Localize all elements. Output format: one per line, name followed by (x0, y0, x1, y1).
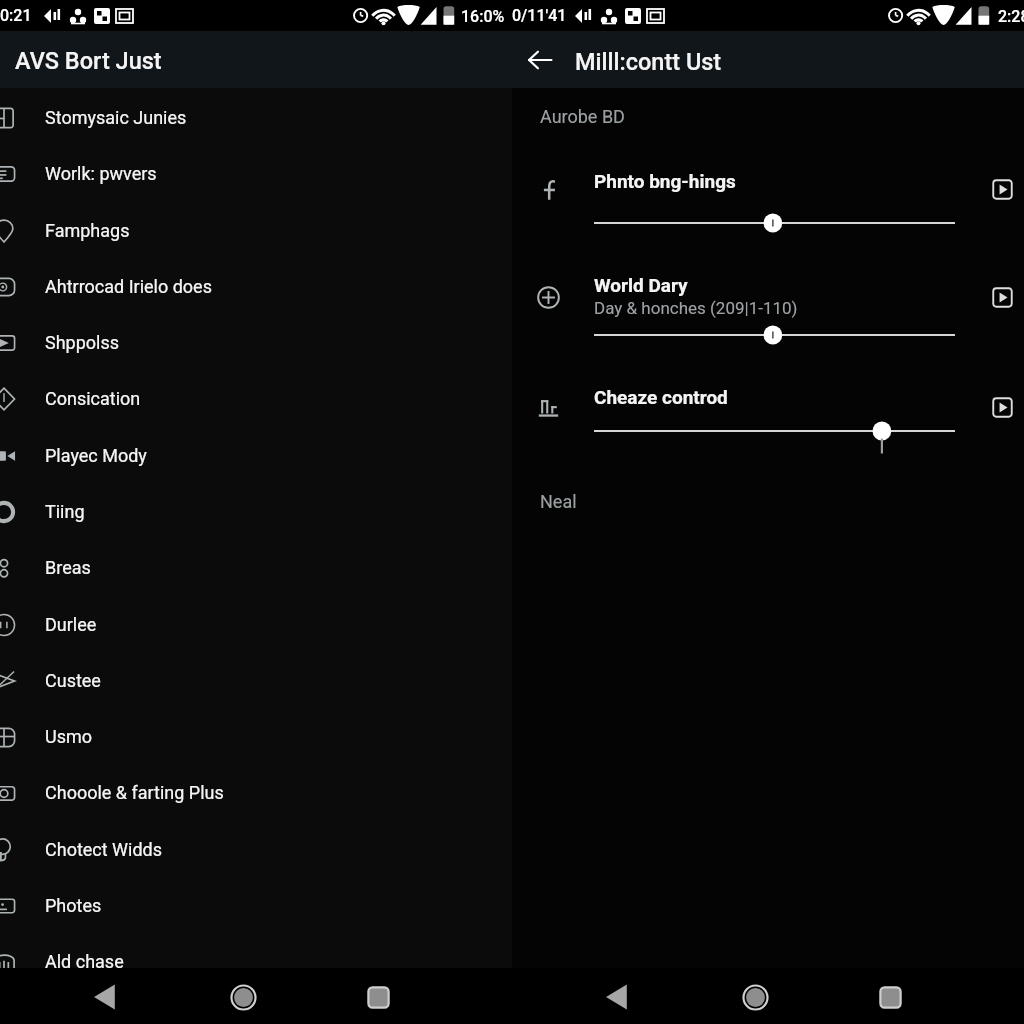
button[interactable]: Home (221, 975, 265, 1019)
staticText: Milll:contt Ust (575, 48, 722, 76)
staticText: Ald chase (45, 951, 124, 968)
button[interactable]: Recents (868, 975, 912, 1019)
button[interactable]: Playec Mody (0, 427, 512, 483)
button[interactable]: Durlee (0, 596, 512, 652)
button[interactable]: Play (982, 387, 1022, 427)
button[interactable]: Cheaze controd (586, 378, 964, 410)
staticText: Chooole & farting Plus (45, 782, 224, 803)
staticText: Chotect Widds (45, 839, 163, 860)
button[interactable]: Chotect Widds (0, 821, 512, 877)
button[interactable]: Photes (0, 877, 512, 933)
staticText: Usmo (45, 726, 93, 747)
staticText: Phnto bng-hings (594, 170, 736, 192)
button[interactable]: World Dary (586, 266, 964, 314)
staticText: Neal (540, 491, 577, 512)
button[interactable]: Back (597, 975, 641, 1019)
staticText: Consication (45, 388, 141, 409)
staticText: Shppolss (45, 332, 120, 353)
button[interactable]: Custee (0, 652, 512, 708)
staticText: AVS Bort Just (15, 47, 162, 75)
staticText: Breas (45, 557, 91, 578)
button[interactable]: Option (528, 277, 568, 317)
button[interactable]: Ald chase (0, 933, 512, 968)
button[interactable]: Stomysaic Junies (0, 89, 512, 145)
staticText: 2:28 (998, 7, 1024, 26)
button[interactable]: Ahtrrocad Irielo does (0, 258, 512, 314)
button[interactable]: Slider (586, 319, 963, 351)
button[interactable]: Worlk: pwvers (0, 145, 512, 201)
staticText: Photes (45, 895, 102, 916)
button[interactable]: Shppolss (0, 314, 512, 370)
button[interactable]: Consication (0, 370, 512, 426)
button[interactable]: Usmo (0, 708, 512, 764)
staticText: 16:0% (461, 7, 505, 26)
button[interactable]: Home (733, 975, 777, 1019)
staticText: Playec Mody (45, 445, 147, 466)
staticText: Stomysaic Junies (45, 107, 187, 128)
staticText: Ahtrrocad Irielo does (45, 276, 212, 297)
button[interactable]: Play (982, 169, 1022, 209)
button[interactable]: Tiing (0, 483, 512, 539)
staticText: 0/11'41 (512, 6, 567, 25)
button[interactable]: AVS Bort Just (0, 31, 512, 88)
staticText: 0:21 (0, 6, 32, 25)
button[interactable]: Option (528, 169, 568, 209)
staticText: Custee (45, 670, 101, 691)
staticText: Famphags (45, 220, 130, 241)
button[interactable]: Phnto bng-hings (586, 162, 964, 194)
staticText: Day & honches (209|1-110) (594, 298, 798, 318)
button[interactable]: Option (528, 387, 568, 427)
staticText: Cheaze controd (594, 386, 728, 408)
staticText: Durlee (45, 614, 97, 635)
button[interactable]: Slider (586, 415, 963, 447)
button[interactable]: Famphags (0, 202, 512, 258)
button[interactable]: Back (85, 975, 129, 1019)
button[interactable]: Play (982, 277, 1022, 317)
button[interactable]: Breas (0, 539, 512, 595)
staticText: Tiing (45, 501, 85, 522)
staticText: World Dary (594, 274, 688, 296)
button[interactable]: Slider (586, 207, 963, 239)
button[interactable]: Chooole & farting Plus (0, 764, 512, 820)
staticText: Worlk: pwvers (45, 163, 157, 184)
button[interactable]: Recents (356, 975, 400, 1019)
button[interactable]: Back (512, 31, 568, 88)
staticText: Aurobe BD (540, 106, 625, 127)
